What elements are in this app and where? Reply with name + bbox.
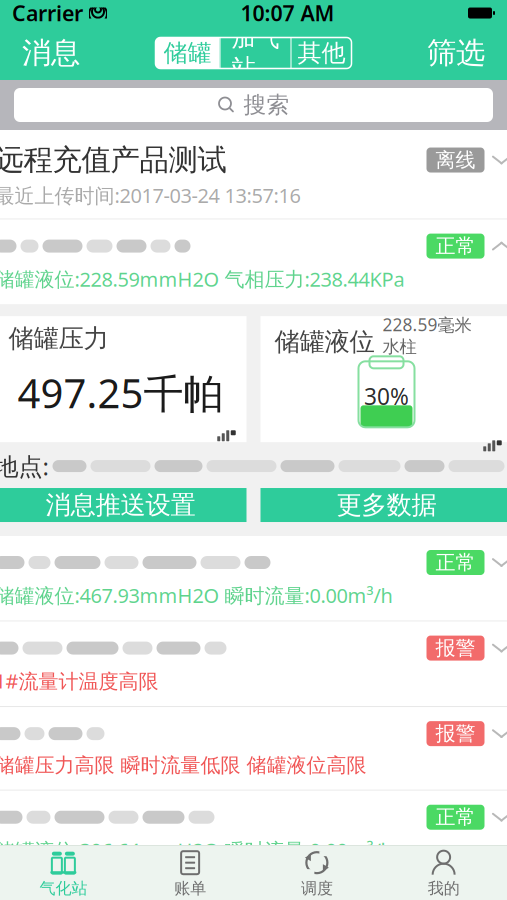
staticText: 正常: [435, 550, 475, 575]
button[interactable]: 正常: [0, 536, 507, 622]
staticText: 消息推送设置: [45, 489, 195, 521]
button[interactable]: 气化站: [0, 844, 127, 900]
button[interactable]: 更多数据: [260, 488, 507, 522]
staticText: 10:07 AM: [240, 0, 334, 27]
staticText: 筛选: [427, 35, 485, 71]
button[interactable]: 正常: [0, 791, 507, 876]
staticText: 储罐: [163, 38, 211, 68]
staticText: 储罐液位:228.59mmH2O 气相压力:238.44KPa: [0, 266, 404, 292]
button[interactable]: 储罐: [155, 37, 219, 68]
button[interactable]: 其他: [291, 37, 351, 68]
button[interactable]: 报警: [0, 707, 507, 791]
staticText: 调度: [301, 879, 333, 898]
staticText: 最近上传时间:2017-03-24 13:57:16: [0, 182, 300, 209]
staticText: 气化站: [39, 879, 87, 898]
button[interactable]: 消息推送设置: [0, 488, 246, 522]
button[interactable]: 报警: [0, 622, 507, 707]
staticText: 1#流量计温度高限: [0, 668, 158, 694]
staticText: 正常: [435, 805, 475, 829]
staticText: 储罐液位:467.93mmH2O 瞬时流量:0.00m³/h: [0, 582, 392, 609]
staticText: 账单: [174, 879, 206, 898]
staticText: 储罐压力: [8, 323, 108, 354]
button[interactable]: 加气站: [220, 37, 290, 68]
staticText: 报警: [435, 636, 475, 660]
staticText: 正常: [435, 234, 475, 258]
staticText: 更多数据: [336, 489, 436, 521]
staticText: 30%: [364, 381, 409, 411]
staticText: 正常: [435, 890, 475, 900]
staticText: Carrier: [12, 0, 83, 27]
staticText: 报警: [435, 721, 475, 746]
button[interactable]: 我的: [380, 844, 507, 900]
staticText: 搜索: [243, 91, 289, 119]
button[interactable]: 搜索: [0, 80, 507, 130]
staticText: 228.59毫米水柱: [382, 313, 471, 357]
staticText: 地点:: [0, 450, 48, 482]
staticText: 储罐液位:306.64mmH2O 瞬时流量:0.00m³/h: [0, 837, 392, 863]
button[interactable]: 远程充值产品测试: [0, 130, 507, 220]
staticText: 其他: [297, 38, 345, 68]
button[interactable]: 正常: [0, 220, 507, 304]
staticText: 我的: [428, 879, 460, 898]
button[interactable]: 调度: [253, 844, 380, 900]
button[interactable]: 筛选: [413, 27, 499, 79]
staticText: 离线: [435, 148, 475, 172]
button[interactable]: 消息: [8, 27, 94, 79]
staticText: 加气站: [231, 23, 279, 82]
staticText: 储罐压力高限 瞬时流量低限 储罐液位高限: [0, 753, 366, 778]
staticText: 497.25千帕: [17, 366, 223, 419]
staticText: 储罐液位: [274, 326, 374, 357]
staticText: 远程充值产品测试: [0, 142, 226, 178]
staticText: 消息: [22, 35, 80, 71]
button[interactable]: 正常: [0, 876, 507, 900]
button[interactable]: 账单: [127, 844, 254, 900]
